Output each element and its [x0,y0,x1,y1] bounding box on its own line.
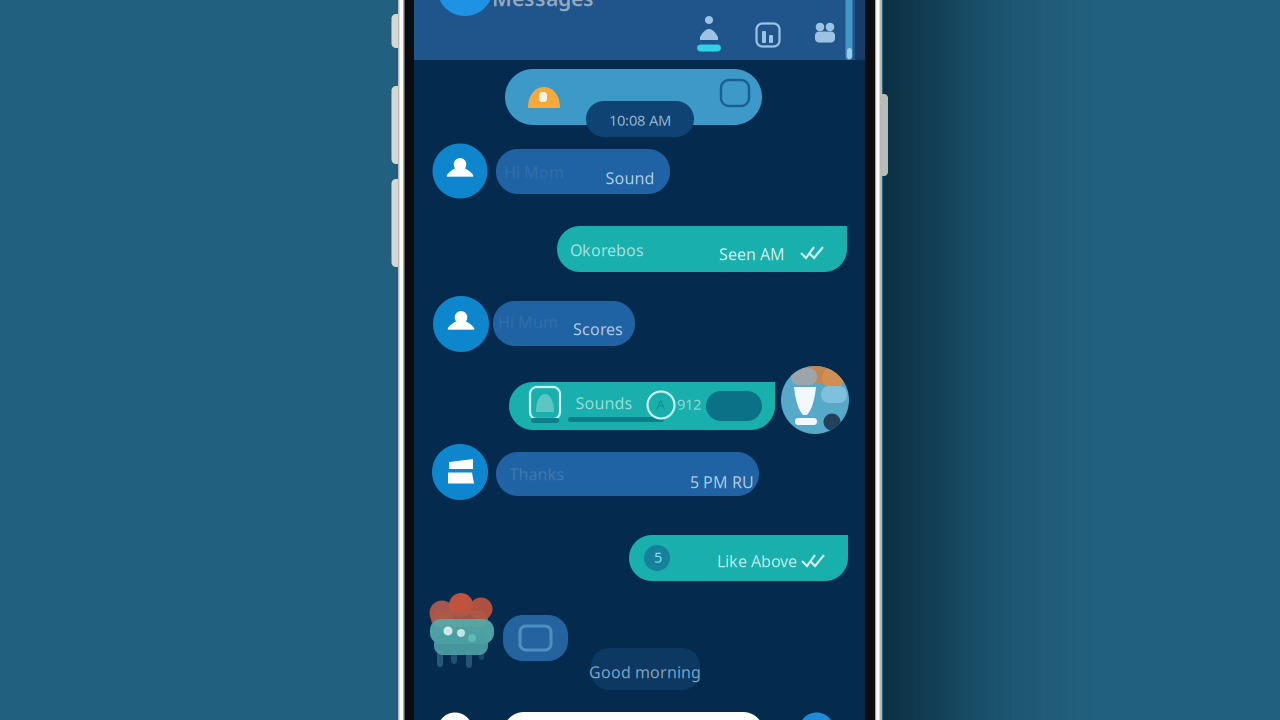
button[interactable]: Attach [437,712,472,720]
staticText: Good morning [589,661,701,683]
staticText: 5 PM RU [690,471,754,493]
button[interactable]: Message field [503,712,764,720]
staticText: Like Above [717,550,797,572]
staticText: Messages [492,0,594,12]
staticText: 5 [654,547,662,567]
staticText: Sound [605,167,654,189]
staticText: 912 [677,394,701,414]
staticText: Okorebos [570,239,644,261]
staticText: Thanks [509,463,564,485]
staticText: 10:08 AM [609,110,671,130]
button[interactable]: Contacts [688,7,730,53]
staticText: Hi Mom [504,161,564,183]
staticText: Seen AM [719,243,785,265]
button[interactable]: Photos [747,14,789,56]
staticText: A [656,395,665,413]
button[interactable]: Groups [804,13,846,55]
staticText: Sounds [575,392,632,414]
button[interactable]: Send [799,712,834,720]
staticText: Hi Mum [498,311,558,333]
staticText: Scores [573,318,623,340]
